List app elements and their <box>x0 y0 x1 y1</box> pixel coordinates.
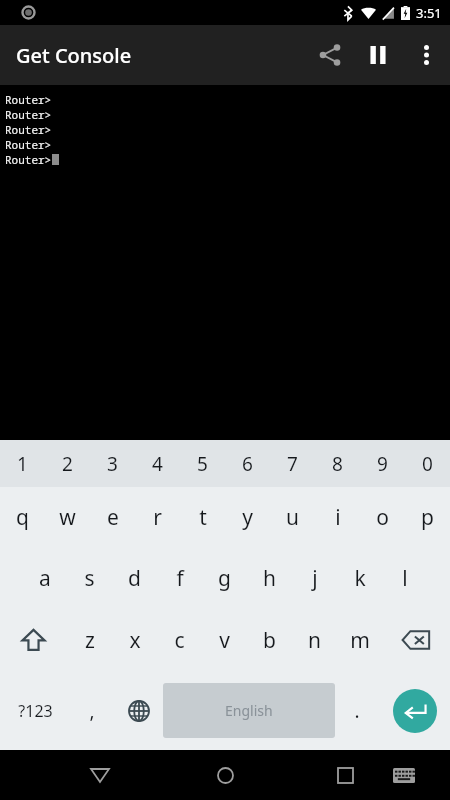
button[interactable]: j <box>292 548 337 609</box>
button[interactable]: Recent apps <box>323 753 367 797</box>
button[interactable]: e <box>90 487 135 548</box>
staticText: 3:51 <box>416 4 442 22</box>
button[interactable]: Shift <box>0 609 67 671</box>
button[interactable]: t <box>180 487 225 548</box>
button[interactable]: m <box>337 609 382 671</box>
button[interactable]: h <box>247 548 292 609</box>
staticText: 9 <box>377 451 388 477</box>
button[interactable]: 9 <box>360 440 405 487</box>
button[interactable]: 1 <box>0 440 45 487</box>
staticText: Router> <box>5 92 52 107</box>
button[interactable]: a <box>22 548 67 609</box>
staticText: 3 <box>107 451 118 477</box>
staticText: 5 <box>197 451 208 477</box>
staticText: m <box>350 626 370 655</box>
staticText: Router> <box>5 152 52 167</box>
staticText: f <box>176 564 184 593</box>
staticText: Router> <box>5 137 52 152</box>
button[interactable]: s <box>67 548 112 609</box>
button[interactable]: Back <box>78 753 122 797</box>
staticText: 0 <box>422 451 433 477</box>
button[interactable]: English <box>163 683 335 738</box>
staticText: h <box>263 564 276 593</box>
button[interactable]: l <box>382 548 427 609</box>
staticText: 4 <box>152 451 163 477</box>
button[interactable]: 4 <box>135 440 180 487</box>
staticText: q <box>16 503 29 532</box>
staticText: 2 <box>62 451 73 477</box>
staticText: p <box>421 503 434 532</box>
button[interactable]: q <box>0 487 45 548</box>
button[interactable]: r <box>135 487 180 548</box>
staticText: j <box>312 564 318 593</box>
staticText: Router> <box>5 107 52 122</box>
button[interactable]: k <box>337 548 382 609</box>
staticText: k <box>354 564 366 593</box>
button[interactable]: d <box>112 548 157 609</box>
staticText: r <box>153 503 162 532</box>
staticText: z <box>85 626 95 655</box>
staticText: x <box>129 626 141 655</box>
staticText: 6 <box>242 451 253 477</box>
staticText: c <box>174 626 185 655</box>
staticText: 1 <box>17 451 28 477</box>
staticText: 8 <box>332 451 343 477</box>
button[interactable]: n <box>292 609 337 671</box>
button[interactable]: 2 <box>45 440 90 487</box>
staticText: b <box>263 626 276 655</box>
staticText: e <box>107 503 119 532</box>
button[interactable]: Enter <box>393 689 437 733</box>
button[interactable]: b <box>247 609 292 671</box>
button[interactable]: 8 <box>315 440 360 487</box>
button[interactable]: Change language <box>114 671 163 750</box>
staticText: , <box>89 698 95 724</box>
button[interactable]: g <box>202 548 247 609</box>
button[interactable]: . <box>335 671 379 750</box>
staticText: o <box>376 503 389 532</box>
staticText: w <box>59 503 76 532</box>
button[interactable]: 6 <box>225 440 270 487</box>
staticText: i <box>335 503 341 532</box>
staticText: Router> <box>5 122 52 137</box>
button[interactable]: 5 <box>180 440 225 487</box>
button[interactable]: Switch keyboard <box>384 755 424 795</box>
button[interactable]: More options <box>402 31 450 79</box>
button[interactable]: z <box>67 609 112 671</box>
staticText: . <box>354 698 360 724</box>
button[interactable]: p <box>405 487 450 548</box>
staticText: t <box>199 503 207 532</box>
button[interactable]: Share <box>306 31 354 79</box>
button[interactable]: c <box>157 609 202 671</box>
staticText: g <box>218 564 231 593</box>
staticText: v <box>219 626 230 655</box>
staticText: l <box>402 564 408 593</box>
staticText: a <box>39 564 51 593</box>
button[interactable]: u <box>270 487 315 548</box>
button[interactable]: ?123 <box>0 671 70 750</box>
staticText: n <box>308 626 321 655</box>
button[interactable]: i <box>315 487 360 548</box>
button[interactable]: x <box>112 609 157 671</box>
button[interactable]: , <box>70 671 114 750</box>
button[interactable]: v <box>202 609 247 671</box>
button[interactable]: w <box>45 487 90 548</box>
staticText: d <box>128 564 141 593</box>
button[interactable]: f <box>157 548 202 609</box>
button[interactable]: 3 <box>90 440 135 487</box>
staticText: u <box>286 503 299 532</box>
button[interactable]: y <box>225 487 270 548</box>
staticText: English <box>225 701 273 720</box>
staticText: Get Console <box>16 42 132 69</box>
staticText: ?123 <box>18 700 53 722</box>
button[interactable]: Backspace <box>382 609 450 671</box>
staticText: y <box>242 503 253 532</box>
button[interactable]: Home <box>203 753 247 797</box>
button[interactable]: o <box>360 487 405 548</box>
button[interactable]: 0 <box>405 440 450 487</box>
staticText: s <box>84 564 95 593</box>
button[interactable]: Pause <box>354 31 402 79</box>
button[interactable]: 7 <box>270 440 315 487</box>
staticText: 7 <box>287 451 298 477</box>
